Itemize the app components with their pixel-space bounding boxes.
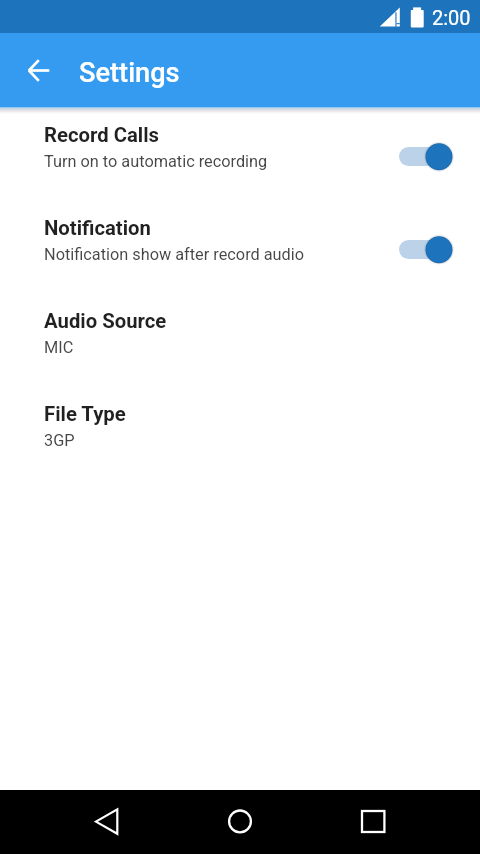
staticText: Audio Source	[44, 309, 167, 333]
button[interactable]: Toggle Record Calls	[396, 138, 458, 174]
staticText: Notification show after record audio	[44, 245, 305, 264]
staticText: 2:00	[432, 6, 471, 29]
staticText: 3GP	[44, 431, 75, 450]
button[interactable]: Recents	[346, 794, 402, 850]
staticText: Record Calls	[44, 123, 160, 147]
staticText: Notification	[44, 216, 151, 240]
staticText: Turn on to automatic recording	[44, 152, 268, 171]
button[interactable]: Back	[78, 794, 134, 850]
staticText: File Type	[44, 402, 126, 426]
button[interactable]: Toggle Notification	[396, 231, 458, 267]
button[interactable]: Home	[212, 794, 268, 850]
button[interactable]: Back	[16, 49, 64, 97]
button[interactable]: Audio Source	[0, 308, 480, 401]
button[interactable]: File Type	[0, 401, 480, 494]
button[interactable]: Notification	[0, 215, 480, 308]
staticText: MIC	[44, 338, 74, 357]
staticText: Settings	[79, 57, 180, 89]
button[interactable]: Record Calls	[0, 122, 480, 215]
